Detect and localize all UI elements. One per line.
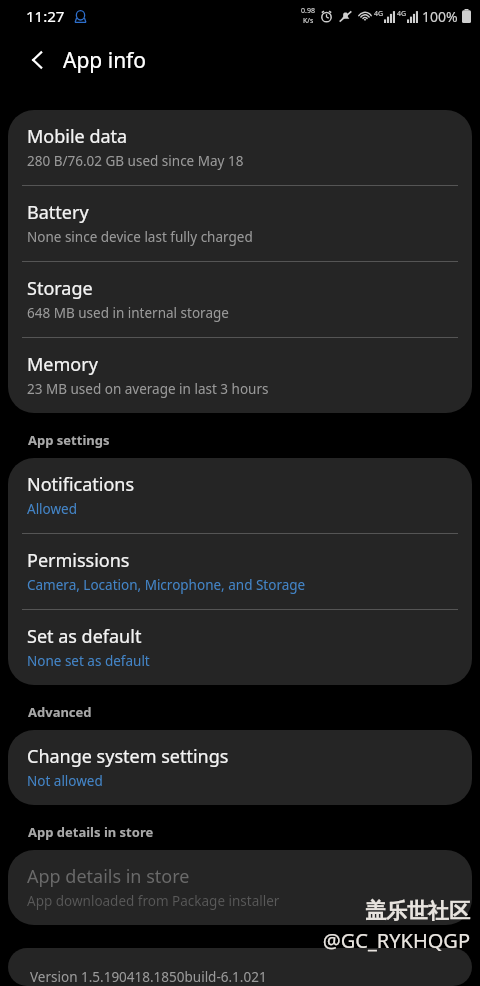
- staticText: Set as default: [27, 624, 142, 649]
- staticText: 4G: [374, 9, 384, 19]
- staticText: 100%: [422, 7, 458, 26]
- staticText: Permissions: [27, 548, 130, 573]
- button[interactable]: Battery: [8, 186, 472, 261]
- staticText: 280 B/76.02 GB used since May 18: [27, 152, 244, 170]
- button[interactable]: Set as default: [8, 610, 472, 685]
- staticText: Not allowed: [27, 772, 103, 790]
- staticText: App details in store: [27, 864, 190, 889]
- staticText: Memory: [27, 352, 98, 377]
- staticText: Mobile data: [27, 124, 128, 149]
- staticText: Version 1.5.190418.1850build-6.1.021: [30, 968, 267, 986]
- button[interactable]: Permissions: [8, 534, 472, 609]
- staticText: Notifications: [27, 472, 135, 497]
- button[interactable]: App details in store: [8, 850, 472, 925]
- staticText: 4G: [397, 9, 407, 19]
- staticText: 648 MB used in internal storage: [27, 304, 229, 322]
- staticText: Allowed: [27, 500, 78, 518]
- button[interactable]: Mobile data: [8, 110, 472, 185]
- staticText: App settings: [28, 431, 110, 449]
- button[interactable]: Back: [16, 38, 60, 82]
- button[interactable]: Memory: [8, 338, 472, 413]
- staticText: K/s: [303, 16, 314, 26]
- staticText: App downloaded from Package installer: [27, 892, 280, 910]
- staticText: 盖乐世社区: [365, 898, 470, 924]
- staticText: Advanced: [28, 703, 92, 721]
- button[interactable]: Notifications: [8, 458, 472, 533]
- staticText: Battery: [27, 200, 89, 225]
- staticText: 23 MB used on average in last 3 hours: [27, 380, 269, 398]
- staticText: 0.98: [301, 6, 315, 16]
- staticText: Change system settings: [27, 744, 229, 769]
- staticText: None set as default: [27, 652, 150, 670]
- staticText: Storage: [27, 276, 93, 301]
- button[interactable]: Change system settings: [8, 730, 472, 805]
- button[interactable]: Storage: [8, 262, 472, 337]
- button[interactable]: Version 1.5.190418.1850build-6.1.021: [8, 948, 472, 986]
- staticText: 11:27: [26, 6, 65, 26]
- staticText: App details in store: [28, 823, 154, 841]
- staticText: None since device last fully charged: [27, 228, 253, 246]
- staticText: @GC_RYKHQGP: [322, 927, 470, 954]
- staticText: Camera, Location, Microphone, and Storag…: [27, 576, 306, 594]
- staticText: App info: [63, 46, 147, 75]
